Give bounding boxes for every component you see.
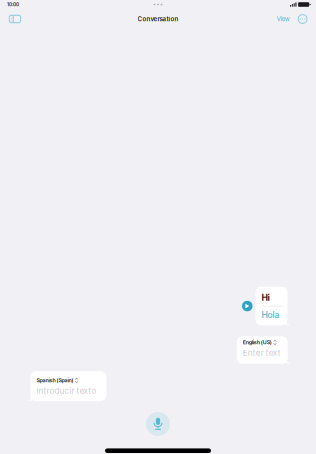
staticText: View xyxy=(277,15,290,23)
button[interactable]: Spanish (Spain) xyxy=(30,371,106,401)
staticText: Conversation xyxy=(137,15,178,23)
button[interactable]: English (US) xyxy=(237,336,288,364)
staticText: Hola xyxy=(261,310,279,320)
button[interactable]: Start speaking xyxy=(146,412,170,436)
staticText: Enter text xyxy=(243,348,281,358)
staticText: Hi xyxy=(261,292,269,303)
staticText: Spanish (Spain) xyxy=(36,377,73,384)
staticText: English (US) xyxy=(243,339,272,346)
staticText: 10:00 xyxy=(7,2,19,7)
button[interactable]: More options xyxy=(294,10,311,28)
staticText: Introducir texto xyxy=(36,386,96,396)
button[interactable]: Show sidebar xyxy=(4,10,26,28)
button[interactable]: Play translation xyxy=(241,300,253,312)
button[interactable]: View xyxy=(273,10,294,28)
